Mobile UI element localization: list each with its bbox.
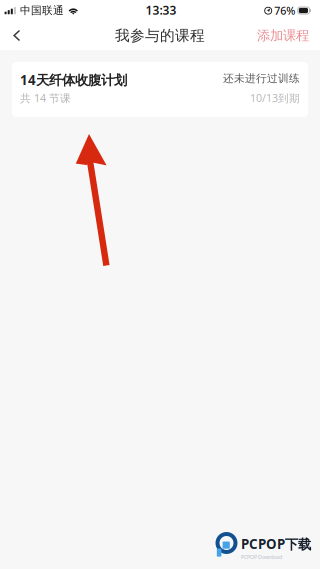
staticText: PCPOP下载 (241, 535, 311, 553)
staticText: 还未进行过训练 (223, 72, 300, 85)
staticText: 添加课程 (257, 27, 309, 44)
button[interactable]: 添加课程 (257, 21, 320, 50)
button[interactable]: 返回 (0, 21, 34, 50)
staticText: 76% (274, 3, 295, 18)
button[interactable]: 14天纤体收腹计划 (12, 62, 308, 117)
staticText: 10/13到期 (250, 91, 300, 105)
staticText: PCPOP Download (241, 553, 282, 560)
staticText: 共 14 节课 (20, 91, 71, 105)
staticText: 中国联通 (20, 4, 64, 17)
staticText: 13:33 (145, 2, 176, 18)
staticText: 我参与的课程 (115, 26, 205, 44)
staticText: 14天纤体收腹计划 (20, 71, 127, 89)
